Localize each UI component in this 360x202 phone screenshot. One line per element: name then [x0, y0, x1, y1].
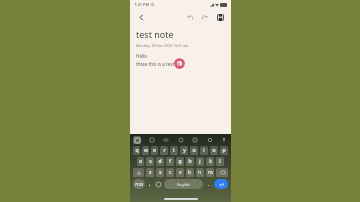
staticText: b	[188, 169, 192, 176]
button[interactable]: Enter	[214, 179, 228, 189]
button[interactable]: m	[206, 168, 214, 177]
staticText: 1:41 PM	[134, 2, 150, 7]
button[interactable]: Symbols	[146, 179, 154, 189]
button[interactable]: c	[166, 168, 174, 177]
button[interactable]: y	[180, 146, 188, 155]
staticText: three this is a test so	[136, 61, 181, 67]
button[interactable]: n	[196, 168, 204, 177]
button[interactable]: ?123	[133, 179, 145, 189]
staticText: c	[169, 169, 172, 176]
button[interactable]: e	[151, 146, 158, 155]
staticText: Monday, 30 Dec 2024 13:41 am	[136, 43, 189, 48]
staticText: i	[203, 147, 205, 154]
other: Text cursor handle	[174, 58, 185, 69]
button[interactable]: English	[164, 179, 203, 189]
button[interactable]: Toolbar action 2	[162, 136, 170, 144]
staticText: v	[179, 169, 182, 176]
staticText: ,	[149, 181, 151, 188]
staticText: x	[159, 169, 162, 176]
button[interactable]: Shift	[133, 168, 144, 177]
button[interactable]: Keyboard options	[133, 136, 141, 144]
button[interactable]: z	[146, 168, 154, 177]
button[interactable]: Toolbar action 5	[206, 136, 214, 144]
staticText: z	[149, 169, 152, 176]
button[interactable]: i	[200, 146, 208, 155]
staticText: m	[208, 169, 213, 176]
staticText: w	[144, 147, 148, 154]
button[interactable]: x	[156, 168, 164, 177]
staticText: g	[178, 158, 182, 165]
staticText: ?123	[135, 182, 143, 187]
staticText: k	[209, 158, 212, 165]
button[interactable]: Undo	[184, 11, 196, 23]
staticText: y	[183, 147, 186, 154]
button[interactable]: Back	[135, 11, 147, 23]
button[interactable]: f	[166, 157, 174, 166]
button[interactable]: Toolbar action 1	[148, 136, 156, 144]
button[interactable]: Period	[204, 179, 213, 189]
button[interactable]: t	[170, 146, 178, 155]
button[interactable]: q	[133, 146, 140, 155]
button[interactable]: l	[216, 157, 224, 166]
staticText: p	[222, 147, 226, 154]
button[interactable]: p	[220, 146, 228, 155]
staticText: s	[149, 158, 152, 165]
button[interactable]: Toolbar action 4	[191, 136, 199, 144]
button[interactable]: Emoji	[154, 179, 163, 189]
button[interactable]: a	[137, 157, 144, 166]
staticText: r	[163, 147, 166, 154]
staticText: o	[212, 147, 216, 154]
staticText: English	[177, 182, 190, 187]
staticText: a	[139, 158, 142, 165]
button[interactable]: w	[142, 146, 149, 155]
button[interactable]: v	[176, 168, 184, 177]
button[interactable]: o	[210, 146, 218, 155]
button[interactable]: b	[186, 168, 194, 177]
button[interactable]: Redo	[198, 11, 210, 23]
button[interactable]: Toolbar action 3	[177, 136, 185, 144]
staticText: f	[169, 158, 171, 165]
button[interactable]: s	[146, 157, 154, 166]
button[interactable]: r	[160, 146, 168, 155]
staticText: n	[198, 169, 202, 176]
button[interactable]: k	[206, 157, 214, 166]
button[interactable]: Toolbar action 6	[220, 136, 228, 144]
staticText: j	[199, 158, 201, 165]
staticText: h	[188, 158, 192, 165]
button[interactable]: Save	[214, 11, 226, 23]
button[interactable]: Backspace	[216, 168, 228, 177]
staticText: .	[208, 181, 210, 188]
button[interactable]: j	[196, 157, 204, 166]
button[interactable]: g	[176, 157, 184, 166]
button[interactable]: u	[190, 146, 198, 155]
button[interactable]: d	[156, 157, 164, 166]
staticText: Hello	[136, 53, 148, 59]
staticText: q	[135, 147, 139, 154]
staticText: u	[192, 147, 196, 154]
staticText: l	[219, 158, 221, 165]
staticText: e	[153, 147, 156, 154]
button[interactable]: h	[186, 157, 194, 166]
staticText: test note	[136, 28, 174, 40]
staticText: d	[158, 158, 162, 165]
staticText: t	[173, 147, 175, 154]
